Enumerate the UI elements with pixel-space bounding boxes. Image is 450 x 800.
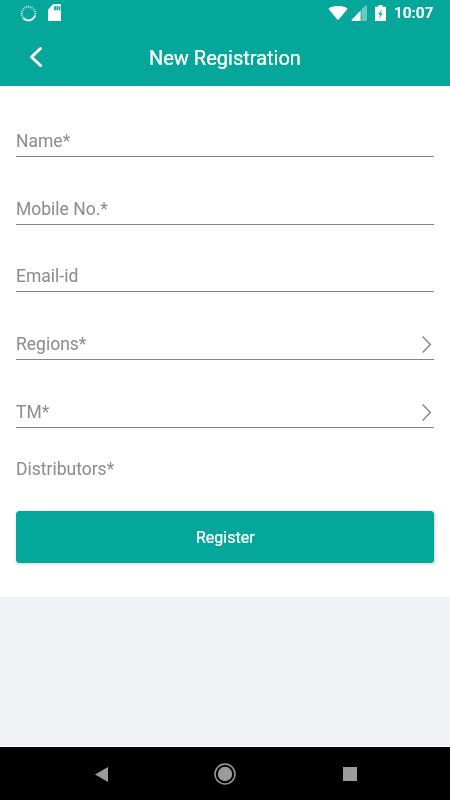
staticText: Email-id	[16, 266, 79, 287]
button[interactable]: Register	[16, 511, 434, 563]
staticText: New Registration	[149, 46, 301, 69]
button[interactable]: Distributors*	[0, 450, 450, 485]
staticText: TM*	[16, 402, 50, 423]
staticText: Register	[196, 528, 255, 547]
staticText: Name*	[16, 131, 71, 152]
staticText: Distributors*	[16, 459, 115, 480]
button[interactable]: Home	[201, 750, 249, 798]
button[interactable]: Back	[12, 33, 60, 81]
button[interactable]: Email-id	[0, 257, 450, 292]
button[interactable]: Recent apps	[326, 750, 374, 798]
button[interactable]: Back	[77, 750, 125, 798]
button[interactable]: Name*	[0, 122, 450, 157]
staticText: Mobile No.*	[16, 199, 108, 220]
staticText: Regions*	[16, 334, 87, 355]
button[interactable]: Mobile No.*	[0, 190, 450, 225]
button[interactable]: Regions*	[0, 325, 450, 360]
button[interactable]: TM*	[0, 393, 450, 428]
staticText: 10:07	[394, 4, 434, 22]
